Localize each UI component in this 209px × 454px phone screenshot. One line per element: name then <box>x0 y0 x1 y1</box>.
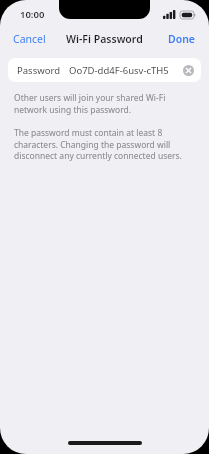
staticText: The password must contain at least 8 cha… <box>14 127 195 162</box>
staticText: Other users will join your shared Wi‑Fi … <box>14 92 195 116</box>
staticText: Password <box>17 64 60 77</box>
staticText: Wi‑Fi Password <box>66 32 143 46</box>
button[interactable]: Password <box>8 58 201 82</box>
staticText: 10:00 <box>20 8 45 21</box>
staticText: Done <box>168 32 196 46</box>
button[interactable]: Cancel <box>0 28 59 50</box>
button[interactable]: Clear text <box>181 63 195 77</box>
staticText: Cancel <box>13 32 46 46</box>
button[interactable]: Done <box>155 28 209 50</box>
staticText: Oo7D-dd4F-6usv-cTH5 <box>69 64 169 77</box>
